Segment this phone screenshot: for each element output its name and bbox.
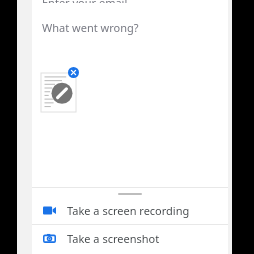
staticText: Take a screenshot [67, 231, 160, 246]
staticText: What went wrong? [42, 20, 139, 35]
button[interactable]: Take a screen recording [32, 197, 228, 224]
button[interactable]: Edit screenshot [41, 73, 76, 112]
button[interactable]: Enter your email [32, 0, 228, 8]
button[interactable]: What went wrong? [32, 17, 228, 37]
button[interactable]: Remove screenshot [68, 67, 79, 78]
staticText: Take a screen recording [67, 203, 190, 218]
staticText: Enter your email [42, 0, 128, 3]
button[interactable]: Take a screenshot [32, 225, 228, 252]
